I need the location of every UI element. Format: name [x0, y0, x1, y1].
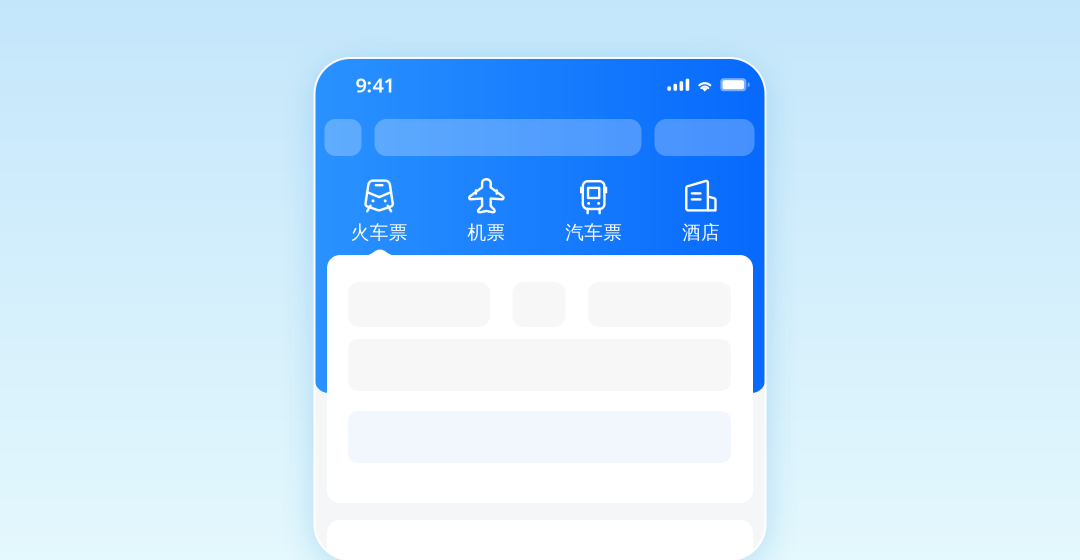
staticText: 汽车票 — [565, 221, 622, 244]
button[interactable]: 酒店 — [647, 175, 754, 246]
staticText: 9:41 — [355, 71, 394, 98]
button[interactable]: 汽车票 — [540, 175, 647, 246]
button[interactable]: Account — [654, 119, 754, 156]
staticText: 酒店 — [682, 221, 720, 244]
staticText: 火车票 — [351, 221, 408, 244]
button[interactable]: Menu — [324, 119, 361, 156]
button[interactable]: 机票 — [433, 175, 540, 246]
button[interactable]: 火车票 — [325, 175, 433, 246]
button[interactable]: Search — [374, 119, 641, 156]
staticText: 机票 — [467, 221, 505, 244]
